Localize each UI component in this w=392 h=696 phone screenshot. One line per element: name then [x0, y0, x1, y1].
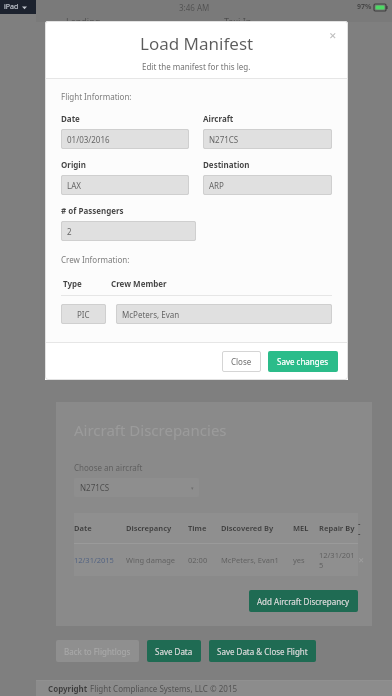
button[interactable]: 12/31/2015 [74, 550, 358, 570]
staticText: Crew Member [111, 278, 167, 289]
staticText: iPad [4, 2, 19, 12]
button[interactable]: 2 [61, 221, 196, 241]
button[interactable]: Close [222, 351, 261, 372]
staticText: Save Data & Close Flight [217, 646, 308, 657]
button[interactable]: N271CS [74, 478, 199, 497]
staticText: yes [293, 555, 319, 565]
staticText: McPeters, Evan [122, 309, 180, 320]
staticText: Copyright [48, 683, 90, 694]
staticText: ARP [209, 180, 224, 191]
button[interactable]: 01/03/2016 [61, 129, 189, 149]
staticText: Discrepancy [126, 523, 188, 533]
staticText: Save Data [155, 646, 193, 657]
button[interactable]: Save Data & Close Flight [209, 640, 316, 662]
staticText: 3:46 AM [179, 2, 210, 13]
staticText: Time [188, 523, 221, 533]
staticText: 12/31/2015 [74, 555, 126, 565]
staticText: Crew Information: [61, 254, 130, 265]
staticText: Load Manifest [140, 32, 254, 55]
button[interactable]: PIC [61, 304, 106, 324]
staticText: N271CS [209, 134, 239, 145]
button[interactable]: Save Data [147, 640, 201, 662]
button[interactable]: ARP [203, 175, 332, 195]
staticText: Repair By [319, 523, 358, 533]
staticText: N271CS [80, 482, 110, 493]
staticText: Flight Information: [61, 91, 132, 102]
staticText: McPeters, Evan1 [221, 555, 293, 565]
staticText: 02:00 [188, 555, 221, 565]
staticText: PIC [77, 309, 90, 320]
staticText: Add Aircraft Discrepancy [257, 596, 350, 607]
staticText: Discovered By [221, 523, 293, 533]
staticText: Type [63, 278, 111, 289]
staticText: Wing damage [126, 555, 188, 565]
button[interactable]: Add Aircraft Discrepancy [249, 590, 358, 612]
staticText: Aircraft [203, 113, 234, 124]
button[interactable]: McPeters, Evan [116, 304, 332, 324]
staticText: Destination [203, 159, 250, 170]
staticText: 12/31/2015 [319, 550, 358, 570]
staticText: Choose an aircraft [74, 462, 143, 473]
staticText: Landing [66, 15, 101, 27]
staticText: ✕ [329, 31, 337, 41]
button[interactable]: Close dialog [324, 27, 342, 45]
staticText: Taxi In [224, 15, 252, 27]
button[interactable]: LAX [61, 175, 189, 195]
staticText: Edit the manifest for this leg. [142, 61, 251, 72]
staticText: # of Passengers [61, 205, 124, 216]
button[interactable]: Save changes [268, 351, 338, 372]
staticText: Flight Compliance Systems, LLC © 2015 [90, 683, 238, 694]
staticText: MEL [293, 523, 319, 533]
staticText: Date [61, 113, 80, 124]
staticText: 2 [67, 226, 72, 237]
staticText: 01/03/2016 [67, 134, 110, 145]
staticText: 97% [357, 2, 372, 12]
staticText: Aircraft Discrepancies [74, 420, 227, 440]
staticText: Close [231, 356, 252, 367]
staticText: LAX [67, 180, 81, 191]
staticText: Back to Flightlogs [64, 646, 131, 657]
staticText: Save changes [277, 356, 329, 367]
staticText: ▾ [191, 485, 194, 491]
staticText: Origin [61, 159, 86, 170]
button[interactable]: N271CS [203, 129, 332, 149]
staticText: Date [74, 523, 126, 533]
button[interactable]: Back to Flightlogs [56, 640, 139, 662]
